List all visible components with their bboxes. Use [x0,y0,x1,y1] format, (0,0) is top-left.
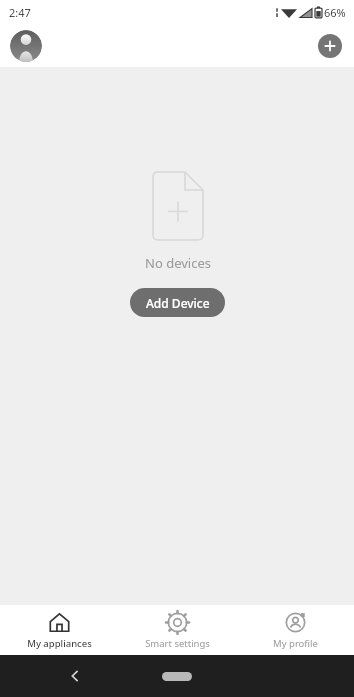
staticText: 2:47 [9,5,31,20]
button[interactable]: Add Device [130,288,225,317]
staticText: My appliances [27,637,92,650]
button[interactable]: Smart settings [118,605,236,655]
button[interactable]: My profile [236,605,354,655]
button[interactable]: Account [10,30,42,62]
staticText: Smart settings [145,637,210,650]
staticText: 66% [324,5,346,20]
button[interactable]: Add [318,34,342,58]
staticText: No devices [145,254,211,272]
button[interactable]: Back [62,663,88,689]
button[interactable]: My appliances [0,605,118,655]
staticText: My profile [273,637,318,650]
button[interactable]: Home [162,672,192,681]
staticText: Add Device [146,295,210,311]
